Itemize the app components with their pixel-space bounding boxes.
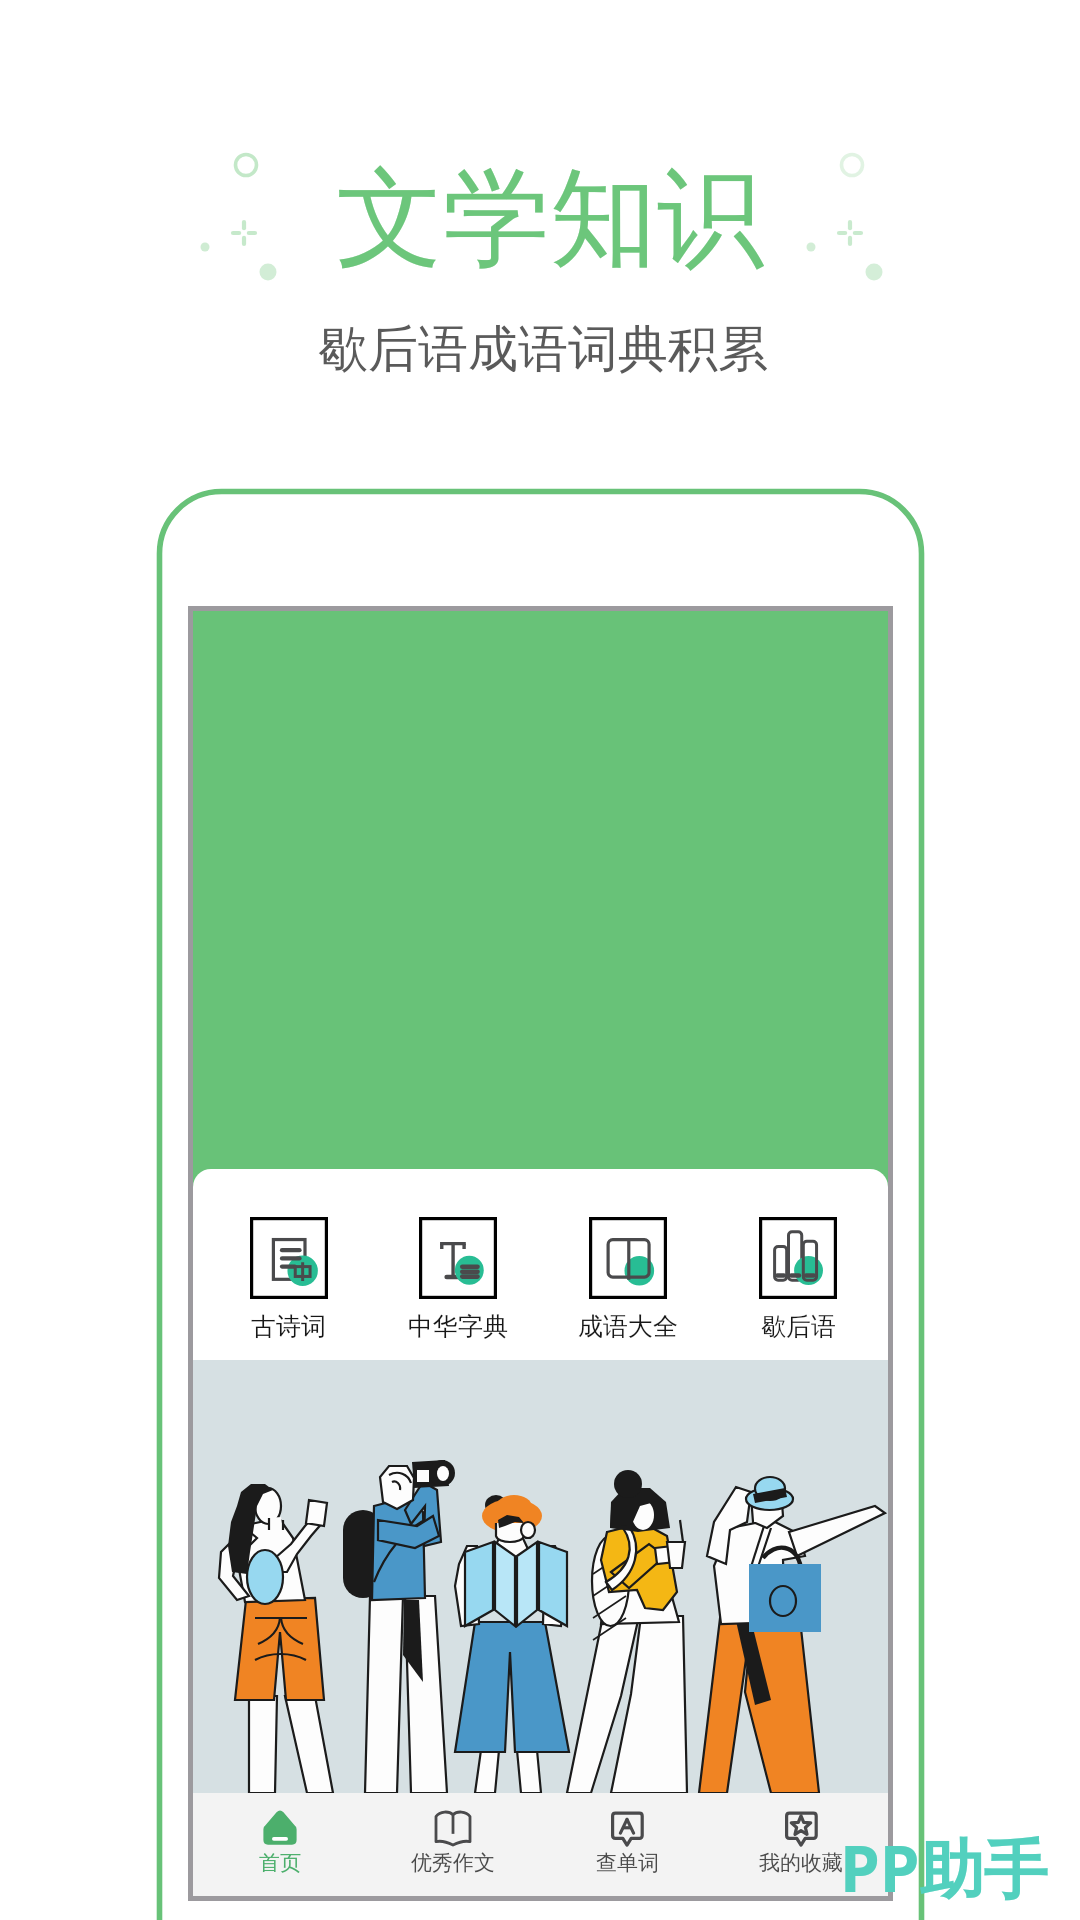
button[interactable]: 我的收藏 xyxy=(714,1793,888,1896)
button[interactable]: 歇后语 xyxy=(713,1169,883,1360)
staticText: PP助手 xyxy=(840,1824,1048,1911)
other: Travellers illustration xyxy=(193,1360,888,1793)
button[interactable]: 中华字典 xyxy=(373,1169,543,1360)
button[interactable]: 查单词 xyxy=(540,1793,714,1896)
staticText: 首页 xyxy=(259,1850,301,1876)
staticText: 优秀作文 xyxy=(411,1850,495,1876)
staticText: 成语大全 xyxy=(578,1311,678,1342)
staticText: 歇后语成语词典积累 xyxy=(318,318,768,381)
staticText: 古诗词 xyxy=(251,1311,326,1342)
staticText: 歇后语 xyxy=(761,1311,836,1342)
button[interactable]: 优秀作文 xyxy=(366,1793,540,1896)
staticText: 查单词 xyxy=(596,1850,659,1876)
button[interactable]: 成语大全 xyxy=(543,1169,713,1360)
staticText: 文学知识 xyxy=(336,152,764,287)
button[interactable]: 首页 xyxy=(193,1793,366,1896)
button[interactable]: 古诗词 xyxy=(204,1169,373,1360)
staticText: 我的收藏 xyxy=(759,1850,843,1876)
staticText: 中华字典 xyxy=(408,1311,508,1342)
